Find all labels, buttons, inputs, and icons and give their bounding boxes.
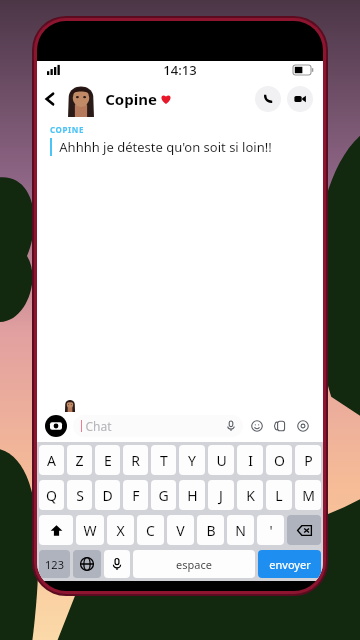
button[interactable]: M [295, 480, 321, 510]
button[interactable]: F [123, 480, 148, 510]
button[interactable]: S [67, 480, 92, 510]
staticText: C [146, 521, 155, 540]
button[interactable]: Location [294, 417, 312, 435]
button[interactable]: N [227, 515, 254, 545]
staticText: A [47, 451, 56, 470]
button[interactable]: B [197, 515, 224, 545]
staticText: COPINE [50, 124, 84, 135]
staticText: Chat [85, 418, 112, 434]
button[interactable]: L [266, 480, 292, 510]
button[interactable]: envoyer [258, 550, 321, 578]
staticText: K [246, 486, 255, 505]
staticText: U [216, 451, 227, 470]
button[interactable]: Shift [39, 515, 73, 545]
staticText: 14:13 [163, 61, 197, 79]
staticText: X [116, 521, 125, 540]
button[interactable]: D [95, 480, 120, 510]
button[interactable]: H [179, 480, 205, 510]
button[interactable]: Chat [73, 415, 243, 437]
button[interactable]: K [237, 480, 263, 510]
staticText: J [219, 486, 223, 505]
staticText: Z [75, 451, 84, 470]
staticText: L [275, 486, 283, 505]
staticText: O [274, 451, 285, 470]
staticText: 123 [45, 557, 64, 572]
staticText: R [131, 451, 140, 470]
button[interactable]: Z [67, 445, 92, 475]
button[interactable]: Q [39, 480, 64, 510]
button[interactable]: Stickers [271, 417, 289, 435]
button[interactable]: Video call [287, 86, 313, 112]
button[interactable]: U [208, 445, 234, 475]
button[interactable]: V [167, 515, 194, 545]
button[interactable]: Call [255, 86, 281, 112]
staticText: V [176, 521, 185, 540]
button[interactable]: W [76, 515, 104, 545]
staticText: envoyer [269, 557, 311, 572]
staticText: Ahhhh je déteste qu'on soit si loin!! [59, 138, 272, 156]
button[interactable]: Copine [105, 89, 172, 109]
staticText: Copine [105, 89, 157, 109]
button[interactable]: A [39, 445, 64, 475]
button[interactable]: P [295, 445, 321, 475]
staticText: espace [176, 557, 212, 572]
button[interactable]: G [151, 480, 176, 510]
button[interactable]: X [107, 515, 134, 545]
button[interactable]: J [208, 480, 234, 510]
staticText: I [248, 451, 253, 470]
staticText: W [83, 521, 97, 540]
button[interactable]: Dictate [104, 550, 130, 578]
staticText: F [132, 486, 140, 505]
button[interactable]: Emoji [248, 417, 266, 435]
button[interactable]: Numbers [39, 550, 70, 578]
staticText: E [104, 451, 112, 470]
staticText: B [206, 521, 216, 540]
button[interactable]: ' [257, 515, 284, 545]
button[interactable]: T [151, 445, 176, 475]
button[interactable]: Camera [45, 415, 67, 437]
staticText: ' [269, 521, 273, 540]
button[interactable]: Language [73, 550, 101, 578]
staticText: S [76, 486, 84, 505]
staticText: N [235, 521, 246, 540]
button[interactable]: Back [37, 79, 63, 119]
button[interactable]: I [237, 445, 263, 475]
staticText: T [160, 451, 168, 470]
staticText: M [302, 486, 315, 505]
button[interactable]: Backspace [287, 515, 321, 545]
button[interactable]: C [137, 515, 164, 545]
staticText: Q [46, 486, 57, 505]
staticText: G [158, 486, 169, 505]
button[interactable]: R [123, 445, 148, 475]
staticText: D [102, 486, 113, 505]
staticText: Y [188, 451, 196, 470]
button[interactable]: espace [133, 550, 255, 578]
button[interactable]: E [95, 445, 120, 475]
button[interactable]: Voice note [223, 418, 239, 434]
button[interactable]: O [266, 445, 292, 475]
button[interactable]: Y [179, 445, 205, 475]
staticText: H [187, 486, 198, 505]
staticText: P [304, 451, 313, 470]
